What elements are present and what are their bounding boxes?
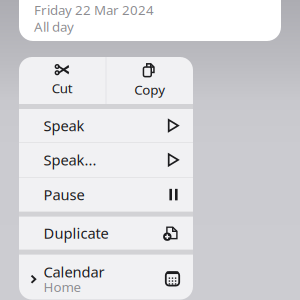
- staticText: Copy: [134, 81, 165, 98]
- staticText: Pause: [43, 185, 84, 204]
- button[interactable]: Calendar: [19, 255, 193, 300]
- button[interactable]: Pause: [19, 178, 193, 212]
- staticText: Calendar: [43, 262, 104, 281]
- button[interactable]: Speak...: [19, 143, 193, 177]
- button[interactable]: Duplicate: [19, 217, 193, 250]
- staticText: Duplicate: [43, 223, 108, 243]
- staticText: Speak: [43, 116, 84, 135]
- button[interactable]: Speak: [19, 109, 193, 142]
- staticText: Speak...: [43, 150, 96, 170]
- staticText: Cut: [52, 79, 73, 97]
- staticText: Home: [43, 278, 81, 296]
- staticText: Friday 22 Mar 2024: [34, 1, 154, 19]
- button[interactable]: Cut: [19, 57, 106, 104]
- staticText: All day: [34, 18, 74, 35]
- button[interactable]: Copy: [106, 57, 193, 104]
